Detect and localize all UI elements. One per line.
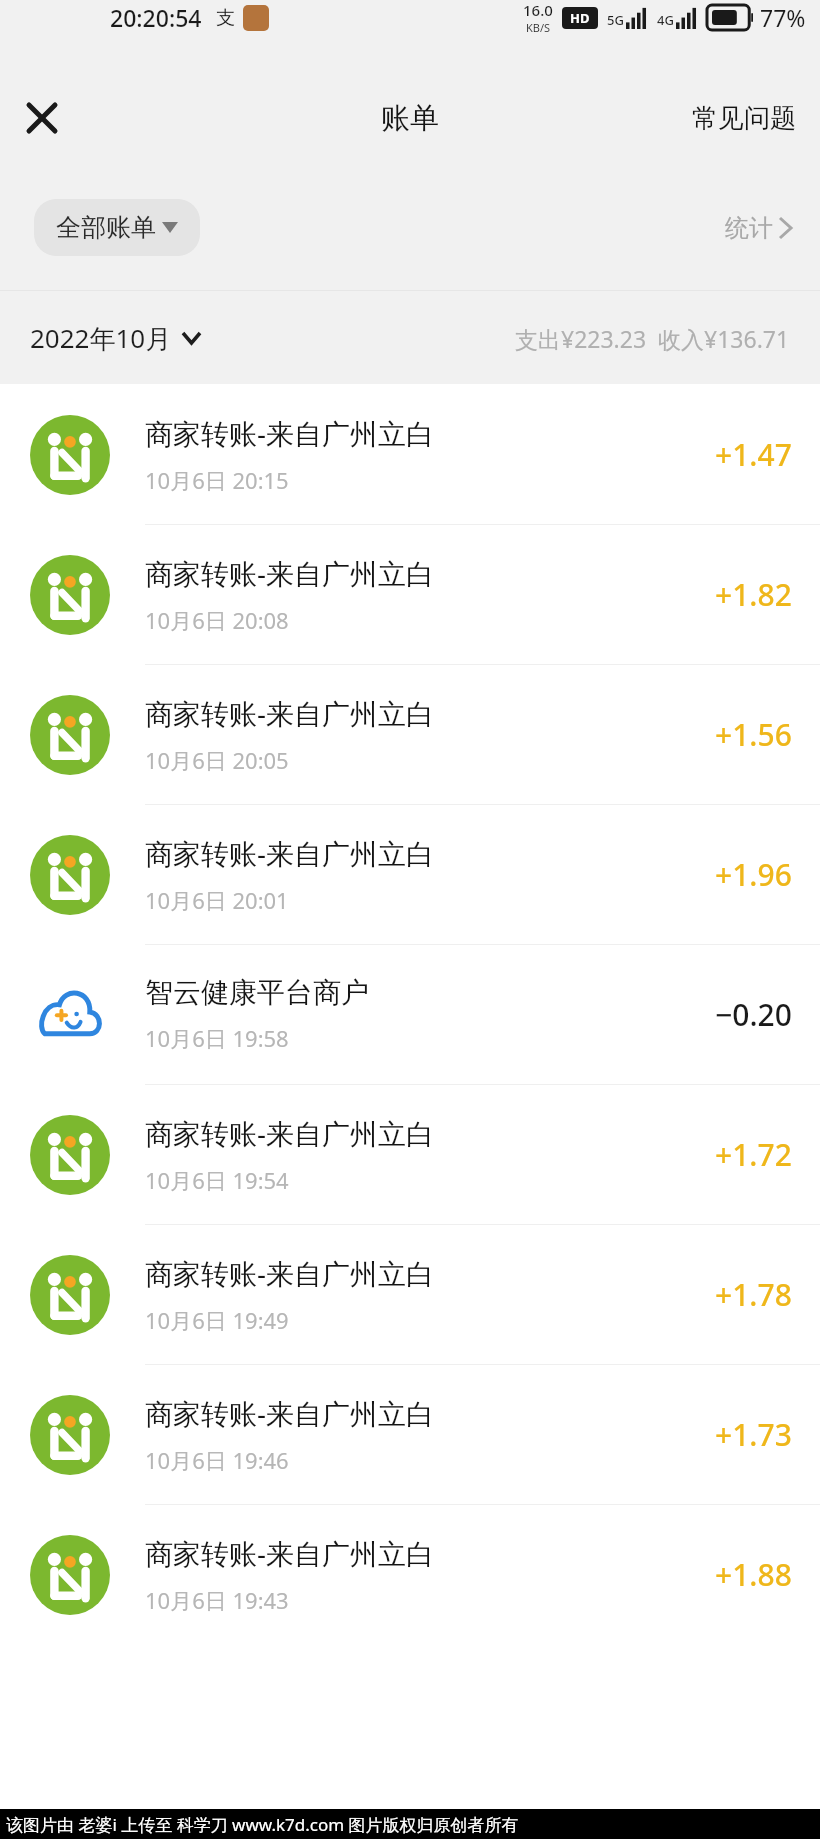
staticText: 商家转账-来自广州立白 [145,694,435,732]
staticText: 16.0 [523,0,553,20]
staticText: 支 [216,6,235,30]
staticText: 常见问题 [692,102,796,135]
staticText: 商家转账-来自广州立白 [145,1534,435,1572]
staticText: 商家转账-来自广州立白 [145,834,435,872]
staticText: +1.72 [715,1134,792,1175]
staticText: 10月6日 20:01 [145,885,289,915]
staticText: 全部账单 [56,212,156,243]
button[interactable]: 全部账单 [34,199,200,256]
button[interactable]: 商家转账-来自广州立白 [0,804,820,944]
staticText: 商家转账-来自广州立白 [145,1254,435,1292]
staticText: 5G [607,11,624,29]
staticText: 10月6日 19:46 [145,1445,289,1475]
staticText: 商家转账-来自广州立白 [145,554,435,592]
staticText: 77% [760,2,806,33]
staticText: +1.73 [715,1414,792,1455]
staticText: 账单 [381,100,439,137]
staticText: 统计 [725,213,773,243]
staticText: 10月6日 19:58 [145,1023,289,1053]
staticText: 商家转账-来自广州立白 [145,414,435,452]
staticText: 商家转账-来自广州立白 [145,1114,435,1152]
staticText: 20:20:54 [110,2,202,33]
staticText: 智云健康平台商户 [145,975,369,1010]
staticText: +1.88 [715,1554,792,1595]
staticText: 10月6日 19:54 [145,1165,289,1195]
staticText: 10月6日 20:15 [145,465,289,495]
button[interactable]: 商家转账-来自广州立白 [0,1364,820,1504]
button[interactable]: 商家转账-来自广州立白 [0,1224,820,1364]
staticText: 10月6日 19:49 [145,1305,289,1335]
staticText: 4G [657,11,674,29]
staticText: +1.78 [715,1274,792,1315]
staticText: +1.82 [715,574,792,615]
staticText: 10月6日 20:08 [145,605,289,635]
staticText: +1.47 [715,434,792,475]
button[interactable]: 常见问题 [686,92,802,145]
button[interactable]: 商家转账-来自广州立白 [0,1084,820,1224]
staticText: HD [570,9,590,27]
button[interactable]: 智云健康平台商户 [0,944,820,1084]
staticText: 10月6日 20:05 [145,745,289,775]
staticText: 商家转账-来自广州立白 [145,1394,435,1432]
staticText: 10月6日 19:43 [145,1585,289,1615]
staticText: −0.20 [715,994,792,1035]
staticText: +1.56 [715,714,792,755]
button[interactable]: 商家转账-来自广州立白 [0,664,820,804]
staticText: 支出¥223.23 收入¥136.71 [515,323,790,354]
staticText: 该图片由 老婆i 上传至 科学刀 www.k7d.com 图片版权归原创者所有 [6,1813,519,1836]
button[interactable]: 2022年10月 [30,312,201,364]
button[interactable]: Close [10,86,74,150]
button[interactable]: 商家转账-来自广州立白 [0,384,820,524]
staticText: 2022年10月 [30,320,172,356]
staticText: KB/S [526,20,551,35]
button[interactable]: 商家转账-来自广州立白 [0,1504,820,1644]
staticText: +1.96 [715,854,792,895]
button[interactable]: 商家转账-来自广州立白 [0,524,820,664]
button[interactable]: 统计 [705,203,812,253]
